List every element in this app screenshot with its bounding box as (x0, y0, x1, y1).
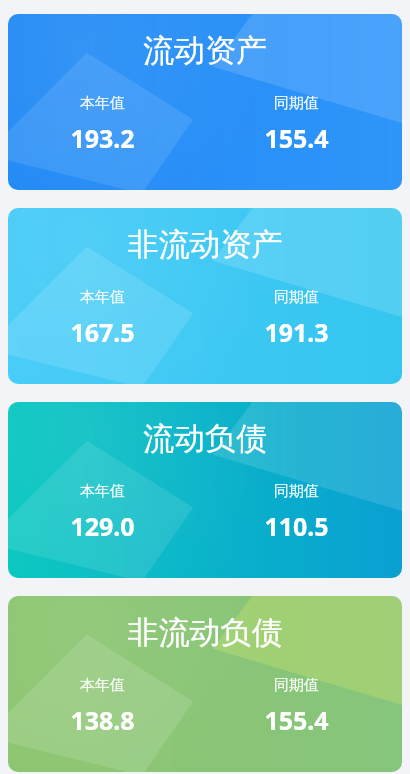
staticText: 138.8 (70, 703, 135, 737)
staticText: 167.5 (70, 315, 135, 349)
staticText: 同期值 (274, 94, 319, 113)
staticText: 191.3 (264, 315, 329, 349)
button[interactable]: 流动负债 (8, 402, 402, 578)
staticText: 155.4 (264, 121, 329, 155)
staticText: 同期值 (274, 482, 319, 501)
staticText: 129.0 (70, 509, 135, 543)
staticText: 110.5 (264, 509, 329, 543)
staticText: 同期值 (274, 288, 319, 307)
staticText: 本年值 (80, 482, 125, 501)
staticText: 本年值 (80, 288, 125, 307)
button[interactable]: 非流动资产 (8, 208, 402, 384)
staticText: 193.2 (70, 121, 135, 155)
staticText: 155.4 (264, 703, 329, 737)
button[interactable]: 流动资产 (8, 14, 402, 190)
staticText: 流动资产 (8, 31, 402, 70)
staticText: 非流动资产 (8, 225, 402, 264)
button[interactable]: 非流动负债 (8, 596, 402, 772)
staticText: 本年值 (80, 94, 125, 113)
staticText: 非流动负债 (8, 613, 402, 652)
staticText: 同期值 (274, 676, 319, 695)
staticText: 本年值 (80, 676, 125, 695)
staticText: 流动负债 (8, 419, 402, 458)
